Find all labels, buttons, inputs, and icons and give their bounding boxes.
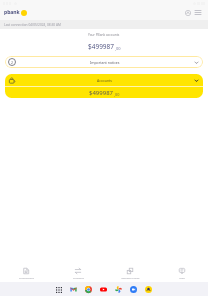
- button[interactable]: PBank: [145, 286, 152, 293]
- staticText: $499987: [89, 89, 114, 97]
- button[interactable]: Menu: [191, 6, 204, 19]
- staticText: ,00: [114, 92, 120, 97]
- staticText: Transfers: [73, 276, 84, 279]
- button[interactable]: Photos: [115, 286, 122, 293]
- button[interactable]: Chrome: [85, 286, 92, 293]
- button[interactable]: Help: [156, 265, 208, 282]
- staticText: $499987: [88, 42, 115, 51]
- button[interactable]: Profile: [181, 6, 194, 19]
- staticText: Last connection 04/05/2024, 08:30 AM: [4, 23, 61, 27]
- staticText: Your PBank accounts: [88, 33, 120, 37]
- button[interactable]: Transactions: [0, 265, 52, 282]
- staticText: Accounts: [97, 78, 112, 83]
- button[interactable]: All apps: [56, 287, 62, 293]
- staticText: pbank: [4, 9, 20, 16]
- button[interactable]: Accounts: [5, 74, 203, 98]
- button[interactable]: Gmail: [70, 286, 77, 293]
- staticText: Transactions: [19, 276, 34, 279]
- staticText: Help: [179, 276, 185, 279]
- staticText: Important notices: [90, 60, 120, 65]
- staticText: Request money: [121, 276, 140, 279]
- staticText: ,00: [115, 46, 121, 51]
- button[interactable]: YouTube: [100, 286, 107, 293]
- button[interactable]: Request money: [104, 265, 156, 282]
- staticText: 2: [11, 60, 14, 65]
- button[interactable]: 2: [5, 56, 203, 68]
- button[interactable]: Meet: [130, 286, 137, 293]
- button[interactable]: Transfers: [52, 265, 104, 282]
